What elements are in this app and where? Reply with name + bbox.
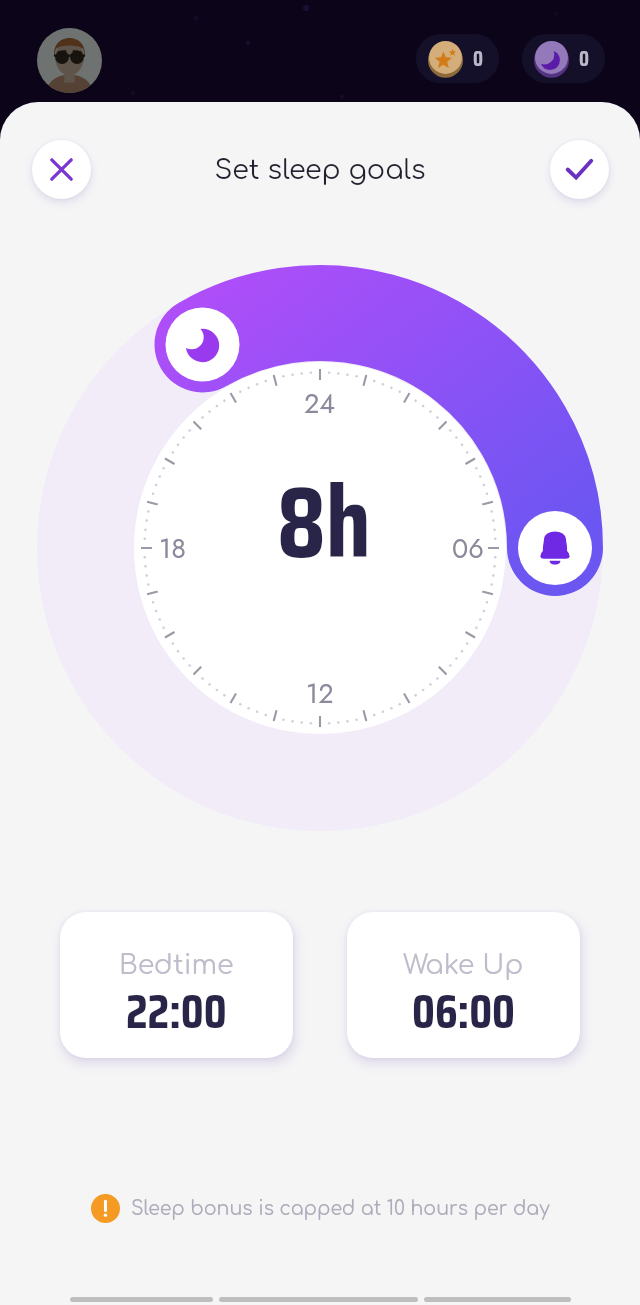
button[interactable]: Coins	[416, 34, 499, 83]
staticText: 0	[579, 42, 590, 75]
staticText: 06	[452, 529, 484, 568]
staticText: Bedtime	[119, 950, 234, 980]
staticText: 18	[159, 529, 186, 568]
button[interactable]: Profile	[37, 28, 102, 93]
button[interactable]: Wake Up	[347, 912, 580, 1058]
staticText: 12	[306, 674, 334, 713]
button[interactable]: Bedtime	[60, 912, 293, 1058]
staticText: 24	[304, 384, 336, 423]
staticText: 22:00	[126, 974, 227, 1050]
staticText: Wake Up	[403, 950, 524, 980]
staticText: Set sleep goals	[0, 155, 640, 185]
staticText: Sleep bonus is capped at 10 hours per da…	[131, 1198, 550, 1219]
button[interactable]: Close	[32, 140, 91, 199]
staticText: 8h	[277, 443, 371, 583]
staticText: 06:00	[412, 974, 516, 1050]
button[interactable]: Sleep points	[522, 34, 605, 83]
button[interactable]: Confirm	[550, 140, 609, 199]
staticText: 0	[473, 42, 484, 75]
